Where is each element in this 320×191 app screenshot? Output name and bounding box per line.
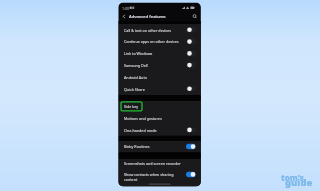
button[interactable]: Screenshots and screen recorder	[118, 158, 201, 170]
button[interactable]: Motions and gestures	[118, 112, 201, 124]
button[interactable]: Back	[120, 12, 127, 19]
button[interactable]: Search	[192, 12, 199, 19]
button[interactable]: Show contacts when sharing	[118, 169, 201, 184]
staticText: Call & text on other devices	[124, 28, 172, 33]
staticText: Bixby Routines	[124, 144, 150, 149]
button[interactable]: Call & text on other devices	[118, 24, 201, 36]
button[interactable]: Side key	[118, 101, 201, 113]
staticText: Android Auto	[124, 75, 147, 80]
staticText: Side key	[124, 104, 139, 109]
button[interactable]: Samsung DeX	[118, 59, 201, 71]
staticText: Link to Windows	[124, 51, 153, 56]
button[interactable]: Link to Windows	[118, 48, 201, 60]
staticText: Motions and gestures	[124, 116, 162, 121]
button[interactable]: One-handed mode	[118, 124, 201, 136]
staticText: Samsung DeX	[124, 63, 149, 68]
staticText: Continue apps on other devices	[124, 39, 179, 44]
staticText: Screenshots and screen recorder	[124, 161, 181, 166]
staticText: tom's	[281, 172, 304, 183]
button[interactable]: Android Auto	[118, 71, 201, 83]
button[interactable]: Quick Share	[118, 83, 201, 95]
button[interactable]: Continue apps on other devices	[118, 36, 201, 48]
staticText: Advanced features	[129, 14, 166, 20]
staticText: Quick Share	[124, 87, 145, 92]
button[interactable]: Bixby Routines	[118, 141, 201, 153]
staticText: 1:00	[122, 6, 130, 11]
staticText: One-handed mode	[124, 128, 157, 133]
staticText: guide	[285, 176, 313, 189]
staticText: content	[124, 177, 138, 182]
staticText: Show contacts when sharing	[124, 172, 174, 177]
